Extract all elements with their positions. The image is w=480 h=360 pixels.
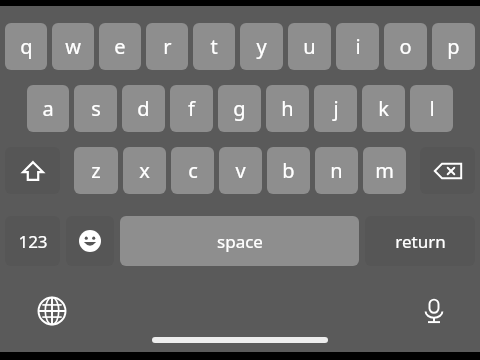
button[interactable]: s <box>74 85 117 132</box>
button[interactable]: Emoji <box>66 216 114 266</box>
staticText: m <box>375 157 394 184</box>
button[interactable]: n <box>315 147 358 194</box>
button[interactable]: x <box>123 147 166 194</box>
button[interactable]: h <box>266 85 309 132</box>
button[interactable]: i <box>336 23 379 70</box>
button[interactable]: u <box>288 23 331 70</box>
button[interactable]: j <box>314 85 357 132</box>
button[interactable]: Shift <box>5 147 60 194</box>
staticText: w <box>65 33 81 60</box>
staticText: q <box>20 33 33 60</box>
button[interactable]: q <box>5 23 47 70</box>
staticText: c <box>188 157 198 184</box>
staticText: return <box>395 230 446 253</box>
staticText: g <box>233 95 246 122</box>
staticText: n <box>330 157 343 184</box>
button[interactable]: a <box>27 85 69 132</box>
staticText: 123 <box>18 230 48 253</box>
button[interactable]: Change keyboard language <box>30 289 74 333</box>
staticText: r <box>163 33 172 60</box>
button[interactable]: y <box>240 23 283 70</box>
button[interactable]: k <box>362 85 405 132</box>
staticText: p <box>447 33 460 60</box>
staticText: u <box>303 33 316 60</box>
button[interactable]: l <box>410 85 453 132</box>
button[interactable]: 123 <box>5 216 60 266</box>
staticText: x <box>139 157 150 184</box>
button[interactable]: b <box>267 147 310 194</box>
button[interactable]: e <box>99 23 141 70</box>
staticText: d <box>137 95 150 122</box>
staticText: o <box>399 33 412 60</box>
button[interactable]: Backspace <box>420 147 475 194</box>
button[interactable]: r <box>146 23 188 70</box>
staticText: space <box>217 230 263 253</box>
button[interactable]: z <box>74 147 118 194</box>
staticText: k <box>378 95 389 122</box>
staticText: h <box>281 95 294 122</box>
button[interactable]: o <box>384 23 427 70</box>
button[interactable]: return <box>365 216 475 266</box>
staticText: f <box>188 95 195 122</box>
button[interactable]: space <box>120 216 359 266</box>
staticText: l <box>429 95 435 122</box>
button[interactable]: v <box>219 147 262 194</box>
button[interactable]: f <box>170 85 213 132</box>
button[interactable]: g <box>218 85 261 132</box>
staticText: e <box>114 33 126 60</box>
button[interactable]: c <box>171 147 214 194</box>
button[interactable]: m <box>363 147 406 194</box>
staticText: t <box>210 33 218 60</box>
staticText: a <box>42 95 54 122</box>
button[interactable]: p <box>432 23 475 70</box>
staticText: s <box>91 95 101 122</box>
staticText: b <box>282 157 295 184</box>
button[interactable]: t <box>193 23 235 70</box>
button[interactable]: Dictation <box>412 289 456 333</box>
staticText: y <box>256 33 267 60</box>
staticText: z <box>91 157 101 184</box>
button[interactable]: d <box>122 85 165 132</box>
button[interactable]: w <box>52 23 94 70</box>
staticText: i <box>355 33 361 60</box>
staticText: v <box>235 157 246 184</box>
staticText: j <box>333 95 339 122</box>
